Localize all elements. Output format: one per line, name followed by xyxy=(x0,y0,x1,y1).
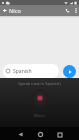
button[interactable]: Home xyxy=(32,127,48,140)
button[interactable]: Spanish xyxy=(3,64,59,78)
staticText: Nico xyxy=(9,7,21,14)
button[interactable]: Back xyxy=(0,5,9,16)
staticText: Speak now in Spanish xyxy=(18,81,61,87)
button[interactable]: Back xyxy=(12,127,28,140)
button[interactable]: Microphone xyxy=(31,89,49,107)
button[interactable]: Recent apps xyxy=(52,127,68,140)
staticText: Micro xyxy=(34,113,45,118)
staticText: Spanish xyxy=(13,68,32,75)
button[interactable]: Play xyxy=(63,65,76,78)
button[interactable]: More options xyxy=(72,5,79,16)
button[interactable]: Call xyxy=(62,5,72,16)
